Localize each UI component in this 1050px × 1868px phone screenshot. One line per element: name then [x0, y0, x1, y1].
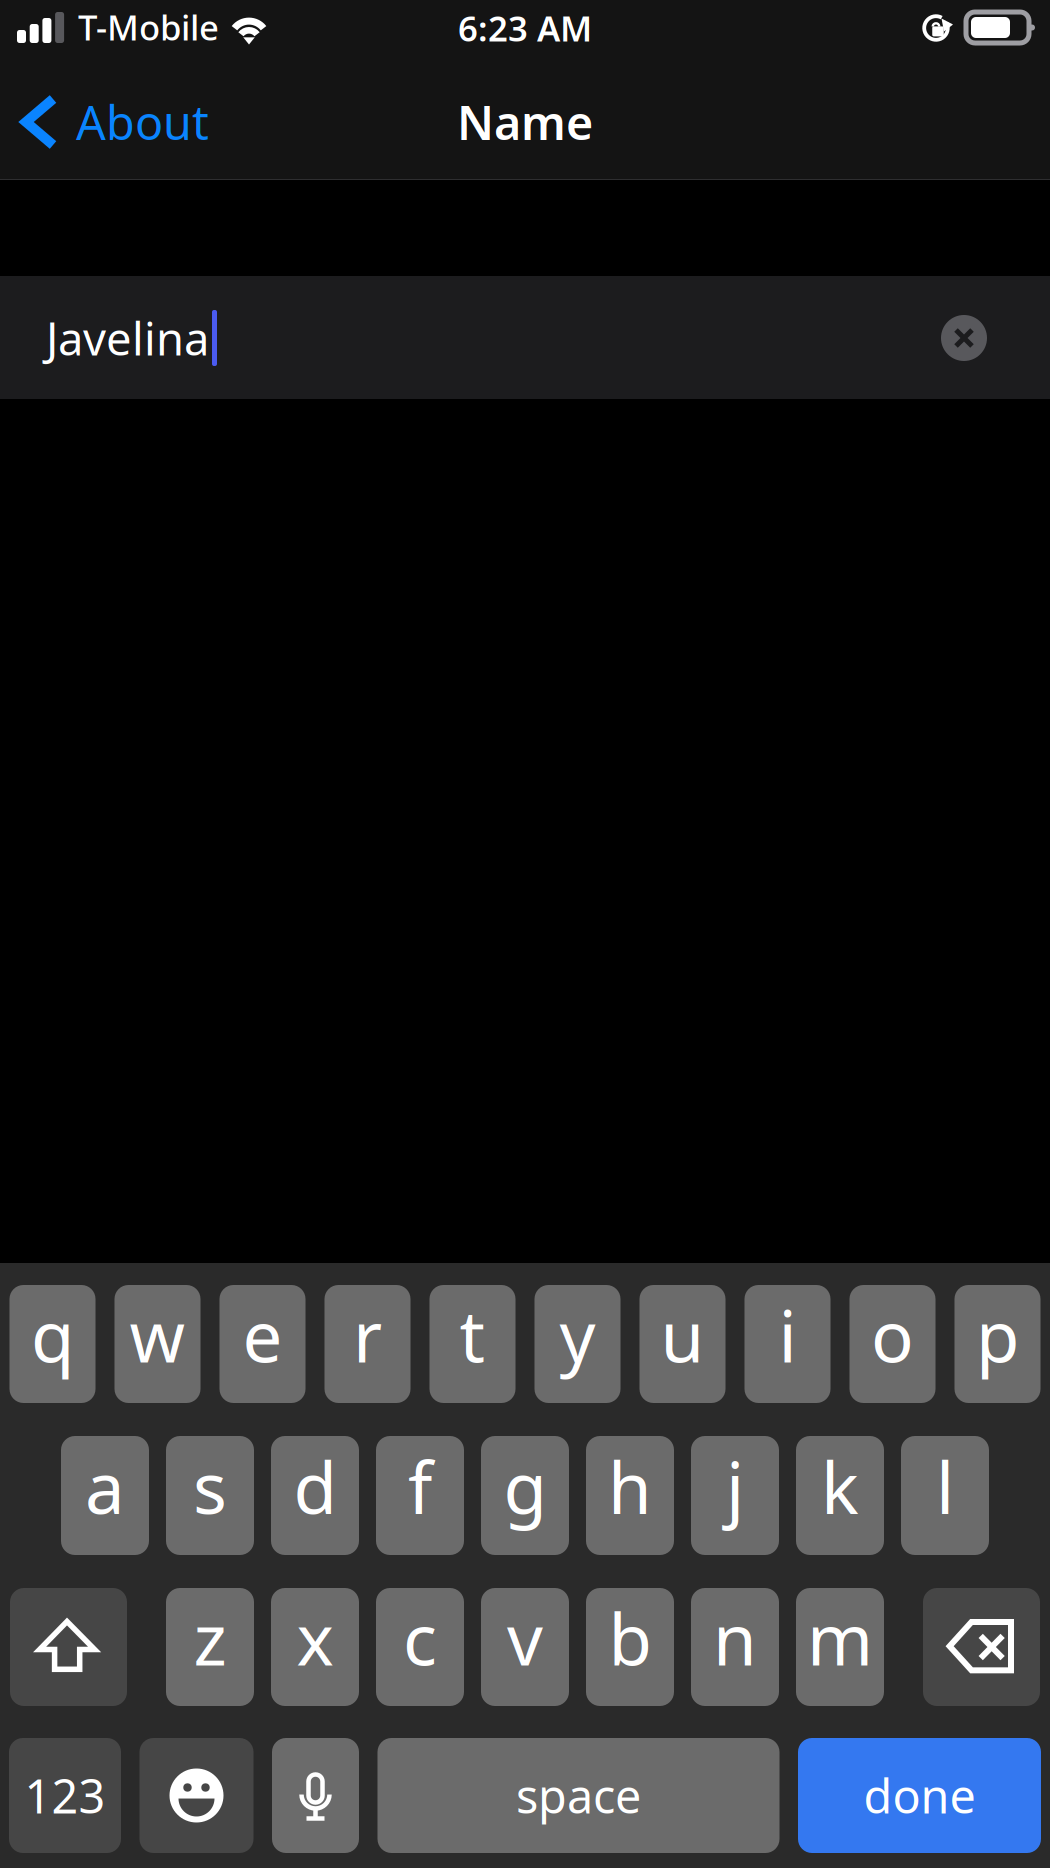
staticText: y: [559, 1288, 595, 1382]
button[interactable]: c: [376, 1588, 464, 1706]
staticText: j: [726, 1440, 744, 1533]
button[interactable]: u: [639, 1285, 725, 1403]
button[interactable]: a: [61, 1436, 149, 1555]
button[interactable]: q: [9, 1285, 95, 1403]
staticText: l: [936, 1440, 954, 1533]
staticText: x: [296, 1591, 333, 1685]
button[interactable]: Delete: [923, 1588, 1040, 1706]
button[interactable]: 123: [9, 1738, 121, 1853]
staticText: o: [871, 1288, 914, 1382]
button[interactable]: n: [691, 1588, 779, 1706]
button[interactable]: h: [586, 1436, 674, 1555]
staticText: z: [193, 1591, 226, 1685]
staticText: m: [807, 1591, 873, 1685]
staticText: T-Mobile: [78, 4, 219, 50]
button[interactable]: p: [954, 1285, 1040, 1403]
button[interactable]: y: [534, 1285, 620, 1403]
staticText: e: [242, 1288, 282, 1382]
staticText: p: [976, 1288, 1019, 1382]
button[interactable]: Shift: [10, 1588, 127, 1706]
staticText: c: [403, 1591, 437, 1685]
staticText: i: [778, 1288, 796, 1382]
button[interactable]: Emoji: [139, 1738, 253, 1853]
staticText: w: [129, 1288, 185, 1382]
staticText: q: [31, 1288, 74, 1382]
button[interactable]: e: [219, 1285, 305, 1403]
button[interactable]: t: [429, 1285, 515, 1403]
button[interactable]: f: [376, 1436, 464, 1555]
button[interactable]: Dictate: [272, 1738, 359, 1853]
staticText: g: [503, 1440, 546, 1533]
staticText: space: [516, 1764, 641, 1826]
button[interactable]: d: [271, 1436, 359, 1555]
staticText: v: [507, 1591, 543, 1685]
staticText: done: [863, 1764, 975, 1826]
button[interactable]: r: [324, 1285, 410, 1403]
staticText: r: [353, 1288, 382, 1382]
staticText: 123: [24, 1764, 105, 1826]
button[interactable]: w: [114, 1285, 200, 1403]
button[interactable]: j: [691, 1436, 779, 1555]
button[interactable]: x: [271, 1588, 359, 1706]
button[interactable]: m: [796, 1588, 884, 1706]
staticText: a: [85, 1440, 125, 1533]
button[interactable]: v: [481, 1588, 569, 1706]
staticText: Name: [457, 91, 593, 153]
staticText: d: [293, 1440, 336, 1533]
button[interactable]: g: [481, 1436, 569, 1555]
staticText: f: [408, 1440, 432, 1533]
staticText: n: [713, 1591, 757, 1685]
staticText: h: [608, 1440, 652, 1533]
button[interactable]: space: [377, 1738, 779, 1853]
button[interactable]: b: [586, 1588, 674, 1706]
staticText: b: [608, 1591, 651, 1685]
staticText: 6:23 AM: [458, 5, 592, 51]
button[interactable]: l: [901, 1436, 989, 1555]
button[interactable]: About: [0, 77, 270, 167]
button[interactable]: z: [166, 1588, 254, 1706]
button[interactable]: i: [744, 1285, 830, 1403]
staticText: t: [459, 1288, 485, 1382]
button[interactable]: Clear text: [925, 299, 1003, 377]
staticText: Javelina: [46, 308, 209, 368]
button[interactable]: o: [849, 1285, 935, 1403]
button[interactable]: k: [796, 1436, 884, 1555]
button[interactable]: done: [798, 1738, 1041, 1853]
staticText: s: [193, 1440, 227, 1533]
staticText: u: [660, 1288, 704, 1382]
staticText: About: [76, 91, 209, 153]
staticText: k: [821, 1440, 859, 1533]
button[interactable]: s: [166, 1436, 254, 1555]
